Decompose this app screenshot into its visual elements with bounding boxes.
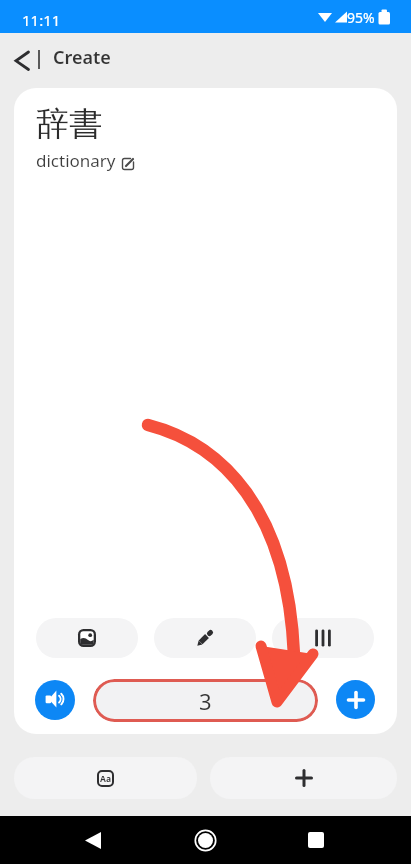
button[interactable]: 3: [93, 679, 318, 722]
button[interactable]: [272, 618, 374, 658]
staticText: Create: [53, 45, 111, 70]
button[interactable]: [189, 824, 221, 856]
button[interactable]: [36, 618, 138, 658]
button[interactable]: [210, 757, 397, 799]
button[interactable]: Aa: [14, 757, 197, 799]
button[interactable]: [35, 680, 75, 720]
staticText: 辞書: [36, 103, 102, 145]
button[interactable]: [77, 824, 109, 856]
staticText: 11:11: [22, 10, 61, 30]
staticText: 95%: [347, 8, 375, 27]
staticText: Aa: [100, 773, 111, 785]
button[interactable]: [336, 680, 375, 719]
staticText: 3: [199, 686, 212, 716]
button[interactable]: [154, 618, 256, 658]
button[interactable]: [122, 158, 134, 170]
button[interactable]: [8, 51, 36, 79]
button[interactable]: [300, 824, 332, 856]
staticText: dictionary: [36, 149, 116, 172]
